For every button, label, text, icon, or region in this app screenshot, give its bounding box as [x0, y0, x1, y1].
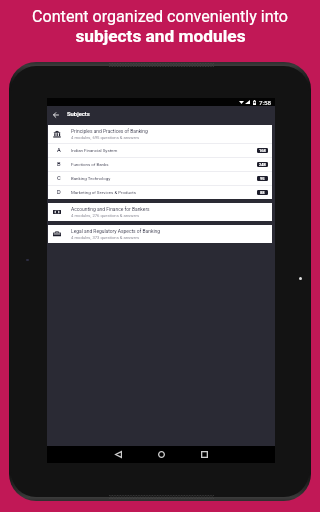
staticText: Legal and Regulatory Aspects of Banking	[71, 228, 161, 234]
staticText: 95	[260, 176, 265, 181]
staticText: 4 modules, 276 questions & answers	[71, 213, 140, 218]
staticText: B	[57, 161, 61, 168]
staticText: Banking Technology	[71, 176, 257, 181]
staticText: 4 modules, 695 questions & answers	[71, 135, 140, 140]
staticText: C	[57, 175, 61, 182]
staticText: Functions of Banks	[71, 162, 257, 167]
staticText: D	[57, 189, 61, 196]
staticText: Indian Financial System	[71, 148, 257, 153]
button[interactable]: Recent apps	[183, 446, 226, 463]
button[interactable]: Back	[97, 446, 140, 463]
staticText: 168	[259, 148, 266, 153]
button[interactable]: Accounting and Finance for Bankers	[48, 203, 272, 221]
button[interactable]: A	[48, 144, 272, 157]
button[interactable]: Home	[140, 446, 183, 463]
button[interactable]: Back	[47, 106, 64, 123]
button[interactable]: Principles and Practices of Banking	[48, 125, 272, 143]
button[interactable]: C	[48, 172, 272, 185]
staticText: Marketing of Services & Products	[71, 190, 257, 195]
staticText: 248	[259, 162, 266, 167]
button[interactable]: Legal and Regulatory Aspects of Banking	[48, 225, 272, 243]
button[interactable]: D	[48, 186, 272, 199]
staticText: 88	[260, 190, 265, 195]
staticText: Content organized conveniently into	[32, 7, 288, 26]
button[interactable]: B	[48, 158, 272, 171]
staticText: Subjects	[67, 111, 90, 118]
staticText: Principles and Practices of Banking	[71, 128, 148, 134]
staticText: 4 modules, 373 questions & answers	[71, 235, 140, 240]
staticText: subjects and modules	[75, 26, 246, 46]
staticText: A	[57, 147, 61, 154]
staticText: 7:58	[259, 99, 271, 106]
staticText: Accounting and Finance for Bankers	[71, 206, 150, 212]
